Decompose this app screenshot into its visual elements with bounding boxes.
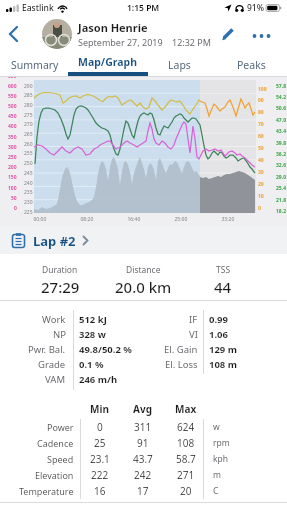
- staticText: 242: [134, 468, 152, 482]
- button[interactable]: Peaks: [234, 54, 269, 76]
- staticText: Map/Graph: [78, 55, 138, 69]
- staticText: Min: [90, 402, 109, 416]
- staticText: TSS: [216, 264, 231, 276]
- button[interactable]: [219, 25, 237, 43]
- staticText: 271: [177, 468, 195, 482]
- staticText: rpm: [213, 437, 230, 449]
- button[interactable]: Laps: [165, 54, 194, 76]
- staticText: 1:15 PM: [127, 2, 160, 14]
- staticText: Jason Henrie: [78, 20, 148, 35]
- staticText: Laps: [168, 58, 191, 72]
- staticText: w: [213, 421, 220, 433]
- staticText: September 27, 2019: [78, 36, 163, 48]
- staticText: Duration: [42, 264, 78, 276]
- staticText: 12:32 PM: [172, 36, 211, 48]
- staticText: Temperature: [19, 485, 74, 497]
- staticText: 129 m: [209, 343, 238, 356]
- staticText: El. Gain: [164, 343, 198, 356]
- staticText: 328 w: [79, 328, 106, 341]
- button[interactable]: [6, 24, 22, 44]
- staticText: Lap #2: [33, 232, 76, 250]
- staticText: Work: [42, 313, 66, 326]
- staticText: El. Loss: [165, 358, 198, 371]
- staticText: 311: [134, 420, 152, 434]
- button[interactable]: Map/Graph: [68, 55, 148, 76]
- staticText: C: [213, 485, 219, 497]
- staticText: 108: [177, 436, 195, 450]
- button[interactable]: [251, 25, 273, 43]
- staticText: 43.7: [133, 452, 153, 466]
- staticText: Summary: [11, 58, 59, 72]
- staticText: 1.06: [209, 328, 228, 341]
- staticText: 624: [177, 420, 195, 434]
- staticText: 16: [94, 484, 106, 498]
- staticText: 0.1 %: [79, 358, 104, 371]
- staticText: VI: [189, 328, 198, 341]
- staticText: 222: [91, 468, 109, 482]
- staticText: Elevation: [35, 469, 74, 481]
- staticText: Avg: [133, 402, 152, 416]
- staticText: 512 kJ: [79, 313, 107, 326]
- staticText: NP: [53, 328, 66, 341]
- staticText: Distance: [126, 264, 161, 276]
- staticText: IF: [189, 313, 198, 326]
- staticText: 20.0 km: [115, 277, 172, 297]
- staticText: 0.99: [209, 313, 228, 326]
- staticText: 108 m: [209, 358, 238, 371]
- staticText: 20: [180, 484, 192, 498]
- staticText: 44: [214, 277, 232, 297]
- staticText: 23.1: [90, 452, 110, 466]
- button[interactable]: Lap #2: [0, 227, 287, 254]
- staticText: 58.7: [176, 452, 196, 466]
- staticText: 0: [97, 420, 103, 434]
- staticText: 246 m/h: [79, 373, 118, 386]
- staticText: m: [213, 469, 221, 481]
- staticText: Eastlink: [22, 2, 54, 14]
- staticText: Cadence: [37, 437, 74, 449]
- staticText: VAM: [45, 373, 66, 386]
- staticText: Grade: [38, 358, 66, 371]
- staticText: 17: [137, 484, 149, 498]
- staticText: Max: [175, 402, 197, 416]
- staticText: Peaks: [237, 58, 266, 72]
- staticText: Pwr. Bal.: [28, 343, 66, 356]
- staticText: 91%: [247, 2, 264, 14]
- staticText: Power: [47, 421, 74, 433]
- staticText: Speed: [47, 453, 74, 465]
- staticText: 25: [94, 436, 106, 450]
- button[interactable]: Summary: [8, 54, 62, 76]
- staticText: 27:29: [41, 277, 80, 297]
- staticText: kph: [213, 453, 229, 465]
- staticText: 91: [137, 436, 149, 450]
- staticText: 49.8/50.2 %: [79, 343, 132, 356]
